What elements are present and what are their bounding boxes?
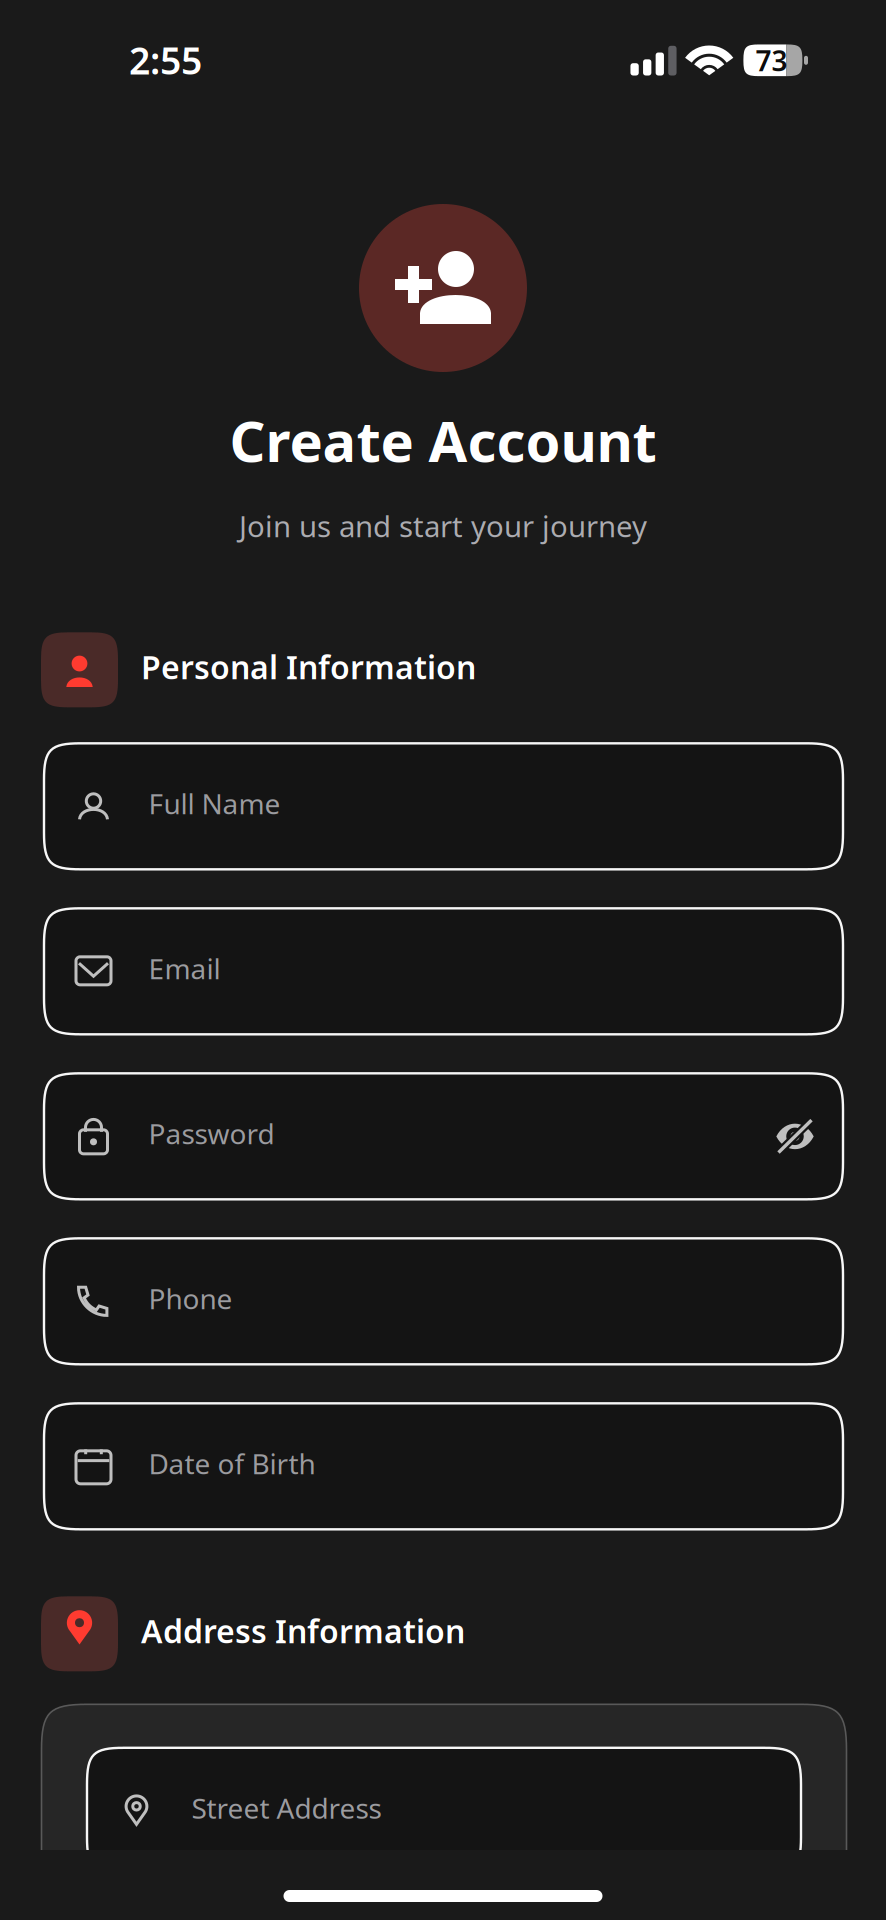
staticText: Phone: [148, 1280, 232, 1317]
button[interactable]: Show password: [773, 1114, 817, 1158]
staticText: 2:55: [129, 35, 202, 85]
button[interactable]: Full Name: [44, 743, 843, 869]
button[interactable]: Password: [44, 1073, 843, 1199]
staticText: Email: [148, 950, 220, 987]
staticText: Create Account: [229, 403, 656, 477]
staticText: Full Name: [148, 785, 280, 822]
staticText: Address Information: [141, 1610, 465, 1652]
staticText: Personal Information: [141, 646, 476, 688]
staticText: Join us and start your journey: [239, 506, 647, 545]
button[interactable]: Email: [44, 908, 843, 1034]
staticText: Password: [148, 1115, 274, 1152]
staticText: Street Address: [191, 1789, 381, 1826]
staticText: 73: [755, 42, 787, 79]
button[interactable]: Phone: [44, 1238, 843, 1364]
button[interactable]: Date of Birth: [44, 1403, 843, 1529]
button[interactable]: Street Address: [87, 1748, 801, 1874]
staticText: Date of Birth: [148, 1445, 315, 1482]
